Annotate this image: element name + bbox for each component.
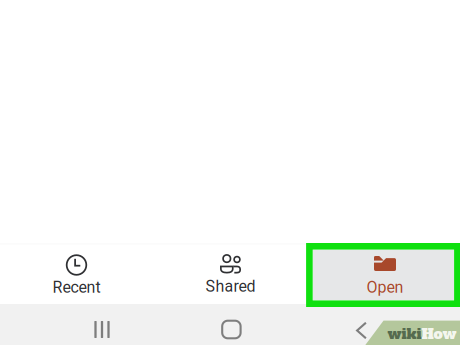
button[interactable]: Home — [211, 314, 251, 344]
staticText: Shared — [205, 277, 255, 296]
button[interactable]: Shared — [154, 245, 307, 304]
staticText: Recent — [52, 278, 100, 297]
button[interactable]: Open — [314, 245, 455, 304]
staticText: How — [422, 324, 457, 344]
staticText: wiki — [388, 324, 422, 344]
button[interactable]: Back — [341, 315, 381, 345]
button[interactable]: Recent — [0, 245, 153, 304]
staticText: Open — [366, 278, 403, 297]
button[interactable]: Recent apps — [82, 314, 122, 344]
